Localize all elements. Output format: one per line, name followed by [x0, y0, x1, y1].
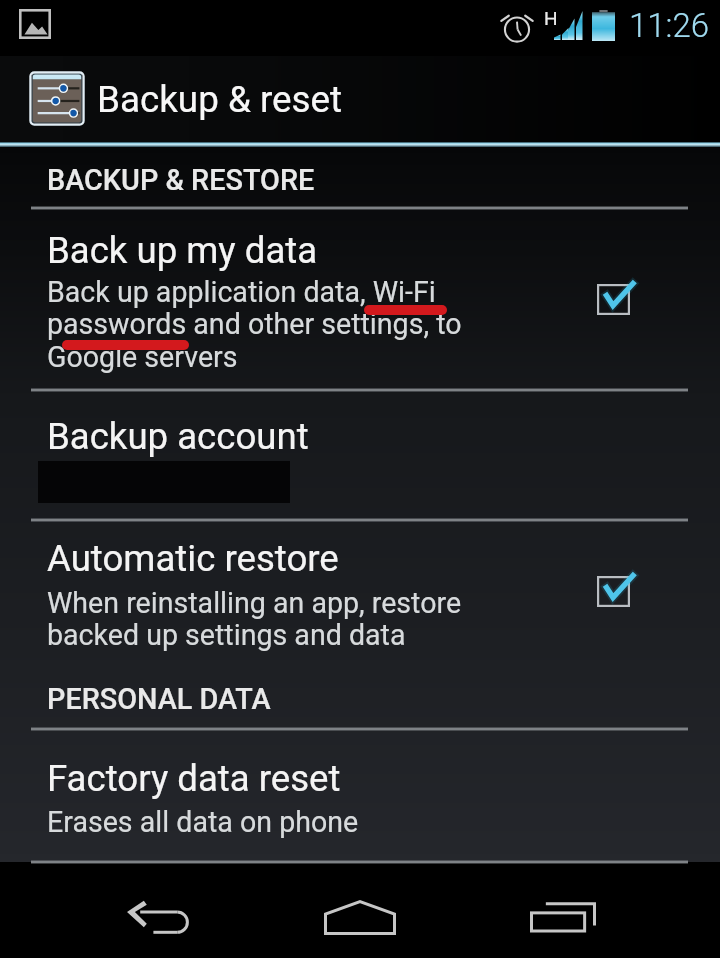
button[interactable]: Backup & reset — [0, 56, 720, 147]
button[interactable]: Recent apps — [460, 864, 675, 958]
button[interactable]: Checkbox, checked — [597, 568, 657, 628]
staticText: BACKUP & RESTORE — [47, 163, 315, 197]
button[interactable]: Factory data reset — [0, 730, 720, 855]
staticText: When reinstalling an app, restore backed… — [47, 586, 462, 652]
staticText: PERSONAL DATA — [47, 682, 271, 716]
button[interactable]: Home — [275, 864, 460, 958]
staticText: Back up application data, Wi-Fi password… — [47, 275, 462, 374]
staticText: Automatic restore — [47, 537, 339, 580]
staticText: Erases all data on phone — [47, 805, 359, 839]
button[interactable]: Back — [45, 864, 275, 958]
button[interactable]: Checkbox, checked — [597, 276, 657, 336]
button[interactable]: Automatic restore — [0, 522, 720, 670]
staticText: 11:26 — [629, 6, 710, 45]
button[interactable]: Back up my data — [0, 210, 720, 388]
other: Screenshot — [19, 9, 53, 41]
staticText: Backup account — [47, 415, 309, 458]
staticText: Back up my data — [47, 229, 318, 272]
button[interactable]: Backup account — [0, 392, 720, 518]
staticText: Factory data reset — [47, 757, 341, 800]
staticText: Backup & reset — [97, 78, 343, 121]
staticText: H — [544, 7, 558, 29]
